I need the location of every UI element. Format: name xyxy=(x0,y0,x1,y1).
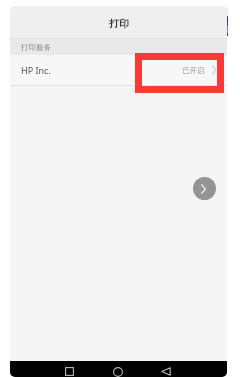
button[interactable]: HP Inc. xyxy=(10,55,227,85)
staticText: 打印 xyxy=(109,17,129,30)
button[interactable]: Home xyxy=(104,364,132,377)
button[interactable]: Back xyxy=(152,364,180,377)
staticText: 已开启 xyxy=(182,66,205,75)
button[interactable]: Next xyxy=(193,177,216,200)
staticText: HP Inc. xyxy=(21,64,51,76)
button[interactable]: Recents xyxy=(55,364,83,377)
staticText: 打印服务 xyxy=(21,43,51,52)
